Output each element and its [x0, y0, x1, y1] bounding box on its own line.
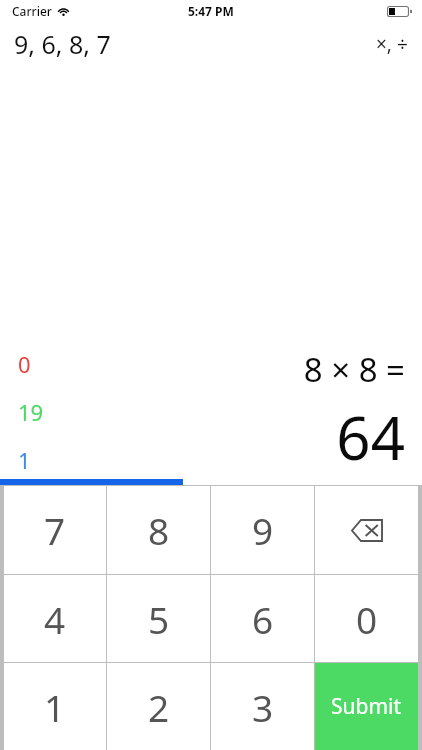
button[interactable]: 9: [211, 486, 314, 574]
staticText: 3: [252, 682, 274, 732]
button[interactable]: 1: [4, 663, 106, 750]
staticText: 5: [148, 594, 170, 644]
staticText: 9, 6, 8, 7: [14, 27, 111, 61]
staticText: 4: [44, 594, 66, 644]
staticText: 1: [44, 682, 66, 732]
staticText: 64: [336, 396, 405, 478]
staticText: 8: [148, 505, 170, 555]
staticText: 0: [356, 594, 378, 644]
button[interactable]: 8: [107, 486, 210, 574]
button[interactable]: 3: [211, 663, 314, 750]
button[interactable]: Submit: [315, 663, 418, 750]
button[interactable]: ×, ÷: [368, 27, 422, 61]
staticText: Submit: [331, 692, 402, 721]
button[interactable]: 0: [315, 575, 418, 662]
staticText: 7: [44, 505, 66, 555]
staticText: 0: [18, 349, 31, 379]
staticText: Carrier: [12, 3, 52, 19]
staticText: 8 × 8 =: [303, 347, 405, 392]
staticText: 19: [18, 397, 44, 427]
button[interactable]: Backspace: [315, 486, 418, 574]
button[interactable]: 2: [107, 663, 210, 750]
staticText: 1: [18, 445, 31, 475]
staticText: 9: [252, 505, 274, 555]
staticText: 5:47 PM: [188, 3, 234, 19]
button[interactable]: 4: [4, 575, 106, 662]
button[interactable]: 9, 6, 8, 7: [0, 23, 119, 65]
button[interactable]: 7: [4, 486, 106, 574]
staticText: ×, ÷: [376, 31, 408, 57]
button[interactable]: 5: [107, 575, 210, 662]
staticText: 2: [148, 682, 170, 732]
button[interactable]: 6: [211, 575, 314, 662]
staticText: 6: [252, 594, 274, 644]
